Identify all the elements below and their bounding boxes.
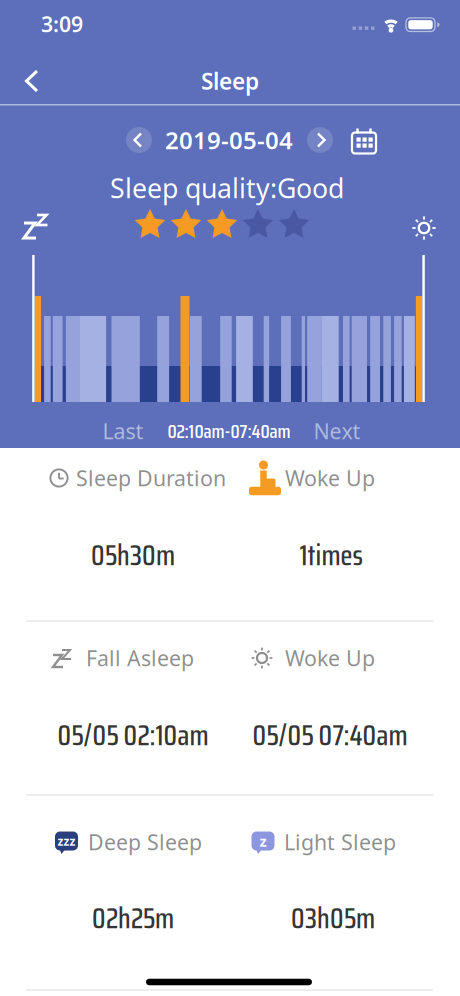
staticText: 05/05 07:40am bbox=[252, 712, 407, 758]
button[interactable]: Back bbox=[20, 68, 44, 94]
staticText: Last bbox=[102, 417, 143, 445]
staticText: 05h30m bbox=[91, 532, 175, 578]
staticText: 03h05m bbox=[291, 895, 375, 941]
staticText: Sleep quality:Good bbox=[110, 170, 344, 206]
staticText: Fall Asleep bbox=[86, 644, 194, 672]
button[interactable]: Last bbox=[102, 417, 143, 445]
button[interactable]: Previous day bbox=[126, 127, 152, 153]
button[interactable]: Next bbox=[313, 417, 360, 445]
staticText: Sleep Duration bbox=[76, 464, 226, 492]
staticText: Woke Up bbox=[285, 644, 375, 672]
staticText: 1times bbox=[299, 532, 362, 578]
button[interactable]: Choose date bbox=[351, 126, 377, 153]
staticText: z bbox=[259, 831, 266, 851]
staticText: Deep Sleep bbox=[88, 828, 202, 856]
staticText: 02h25m bbox=[92, 895, 174, 941]
button[interactable]: Next day bbox=[307, 127, 333, 153]
staticText: Sleep bbox=[201, 66, 259, 96]
staticText: Woke Up bbox=[285, 464, 375, 492]
staticText: 02:10am-07:40am bbox=[167, 415, 290, 447]
staticText: 2019-05-04 bbox=[165, 124, 293, 156]
staticText: Light Sleep bbox=[284, 828, 396, 856]
staticText: 3:09 bbox=[41, 10, 83, 38]
staticText: 05/05 02:10am bbox=[57, 712, 208, 758]
staticText: zzz bbox=[57, 833, 75, 849]
staticText: Next bbox=[313, 417, 360, 445]
